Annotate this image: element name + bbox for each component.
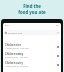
staticText: Find the bbox=[23, 3, 41, 9]
staticText: 1 plate (300 g) · 520 kcal bbox=[5, 47, 29, 50]
staticText: Chicken rice bbox=[5, 43, 21, 47]
staticText: 1 bowl (250 g) · 340 kcal bbox=[5, 65, 29, 68]
button[interactable]: Chicken rice bbox=[4, 30, 60, 35]
staticText: 3 sticks (90 g) · 180 kcal bbox=[5, 56, 28, 59]
staticText: Chicken satay bbox=[5, 52, 24, 56]
button[interactable]: Chicken rice bbox=[3, 42, 61, 51]
staticText: food you ate bbox=[18, 9, 46, 15]
button[interactable]: Chicken satay bbox=[3, 51, 61, 60]
staticText: Chicken curry bbox=[5, 61, 23, 65]
staticText: Chicken rice bbox=[8, 31, 23, 34]
button[interactable]: Chicken curry bbox=[3, 60, 61, 69]
staticText: 9:41 bbox=[5, 24, 9, 27]
